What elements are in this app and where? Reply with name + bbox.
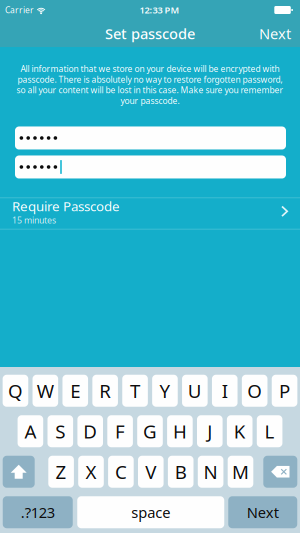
button[interactable]: J (197, 415, 223, 447)
staticText: E (70, 378, 80, 403)
staticText: so all your content will be lost in this… (16, 84, 283, 96)
button[interactable]: W (33, 375, 58, 407)
staticText: O (247, 378, 262, 403)
staticText: Carrier (5, 4, 34, 16)
staticText: Next (247, 502, 279, 522)
button[interactable]: O (242, 375, 267, 407)
button[interactable]: D (77, 415, 103, 447)
staticText: R (99, 378, 111, 403)
staticText: Require Passcode (12, 197, 120, 215)
staticText: 15 minutes (12, 214, 56, 226)
button[interactable]: F (107, 415, 133, 447)
button[interactable]: space (77, 496, 224, 528)
button[interactable]: Z (48, 456, 74, 488)
staticText: U (188, 378, 202, 403)
staticText: Y (159, 378, 170, 403)
button[interactable]: L (257, 415, 282, 447)
button[interactable]: C (108, 456, 134, 488)
button[interactable]: P (272, 375, 297, 407)
staticText: P (279, 378, 290, 403)
staticText: 12:33 PM (140, 4, 180, 16)
staticText: your passcode. (120, 95, 179, 106)
staticText: N (204, 459, 218, 484)
staticText: G (143, 419, 157, 444)
staticText: D (83, 419, 97, 444)
button[interactable]: I (212, 375, 238, 407)
button[interactable]: Delete (263, 456, 297, 488)
staticText: H (173, 419, 187, 444)
staticText: Set passcode (105, 24, 195, 43)
staticText: C (115, 459, 127, 484)
staticText: B (175, 459, 187, 484)
staticText: Q (8, 378, 23, 403)
staticText: Next (259, 24, 291, 43)
button[interactable]: E (62, 375, 88, 407)
button[interactable]: B (168, 456, 193, 488)
button[interactable]: G (137, 415, 163, 447)
staticText: W (37, 378, 54, 403)
button[interactable]: Next (228, 496, 297, 528)
button[interactable]: K (227, 415, 252, 447)
button[interactable]: X (78, 456, 104, 488)
staticText: A (24, 419, 36, 444)
staticText: .?123 (21, 502, 55, 522)
button[interactable]: H (167, 415, 193, 447)
button[interactable]: U (182, 375, 208, 407)
staticText: All information that we store on your de… (20, 63, 279, 75)
staticText: V (145, 459, 156, 484)
button[interactable]: Next (259, 20, 300, 47)
button[interactable]: V (138, 456, 164, 488)
staticText: S (55, 419, 65, 444)
staticText: J (207, 419, 212, 444)
button[interactable]: A (18, 415, 43, 447)
staticText: M (232, 459, 249, 484)
button[interactable]: M (228, 456, 253, 488)
staticText: F (115, 419, 125, 444)
button[interactable]: T (122, 375, 148, 407)
staticText: passcode. There is absolutely no way to … (17, 74, 282, 85)
staticText: T (130, 378, 140, 403)
staticText: Z (56, 459, 67, 484)
button[interactable]: Y (152, 375, 178, 407)
button[interactable]: Q (3, 375, 28, 407)
button[interactable]: R (92, 375, 118, 407)
button[interactable]: .?123 (3, 496, 73, 528)
staticText: I (222, 378, 228, 403)
button[interactable]: Require Passcode (0, 197, 300, 229)
button[interactable]: N (198, 456, 223, 488)
staticText: K (234, 419, 246, 444)
staticText: L (265, 419, 275, 444)
staticText: X (85, 459, 96, 484)
staticText: space (131, 502, 170, 522)
button[interactable]: S (47, 415, 73, 447)
button[interactable]: Shift (3, 456, 35, 488)
